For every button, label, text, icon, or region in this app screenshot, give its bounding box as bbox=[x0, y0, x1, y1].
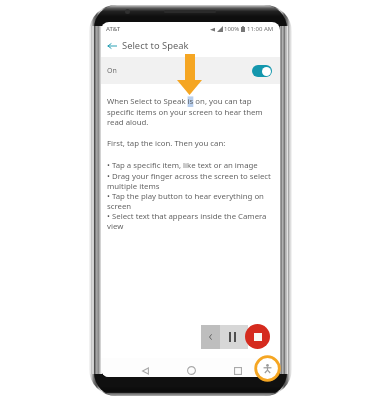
button[interactable]: Select to Speak on bbox=[252, 65, 272, 77]
staticText: On bbox=[107, 66, 117, 76]
button[interactable]: Accessibility bbox=[254, 355, 281, 382]
button[interactable]: Back bbox=[137, 363, 153, 377]
staticText: AT&T bbox=[106, 25, 121, 33]
button[interactable]: Home bbox=[183, 362, 199, 377]
staticText: 11:00 AM bbox=[247, 25, 274, 33]
staticText: • Tap a specific item, like text or an i… bbox=[107, 160, 274, 231]
staticText: Select to Speak bbox=[122, 39, 189, 52]
staticText: 100% bbox=[224, 25, 240, 33]
button[interactable]: Pause bbox=[220, 325, 248, 349]
staticText: When Select to Speak is on, you can tap … bbox=[107, 96, 274, 127]
button[interactable]: Collapse bbox=[201, 325, 220, 349]
button[interactable]: Stop bbox=[245, 324, 270, 349]
staticText: First, tap the icon. Then you can: bbox=[107, 138, 226, 149]
button[interactable]: Recents bbox=[230, 363, 246, 377]
button[interactable]: Back bbox=[103, 37, 121, 55]
